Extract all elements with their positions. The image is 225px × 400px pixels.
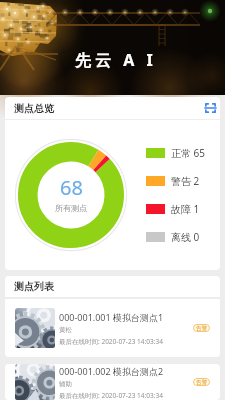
staticText: 所有测点	[55, 203, 87, 213]
staticText: 正常 65	[171, 146, 206, 160]
staticText: 测点列表	[14, 280, 54, 293]
staticText: 辅助	[59, 380, 72, 388]
staticText: 告警	[196, 325, 207, 332]
staticText: 黄松	[59, 326, 72, 334]
button[interactable]: Scan QR code	[201, 99, 219, 117]
staticText: 故障 1	[171, 202, 200, 216]
button[interactable]: 000-001.001 模拟台测点1	[5, 299, 220, 357]
staticText: 最后在线时间: 2020-07-23 14:03:34	[59, 391, 163, 400]
staticText: 68	[60, 174, 83, 201]
staticText: 警告 2	[171, 174, 200, 188]
staticText: 000-001.002 模拟台测点2	[59, 365, 164, 377]
staticText: 测点总览	[14, 102, 54, 115]
staticText: 告警	[196, 379, 207, 386]
staticText: 先云 A I	[75, 49, 157, 71]
staticText: 最后在线时间: 2020-07-23 14:03:34	[59, 337, 163, 346]
staticText: 离线 0	[171, 230, 200, 244]
staticText: 000-001.001 模拟台测点1	[59, 311, 164, 323]
button[interactable]: 000-001.002 模拟台测点2	[5, 364, 220, 400]
